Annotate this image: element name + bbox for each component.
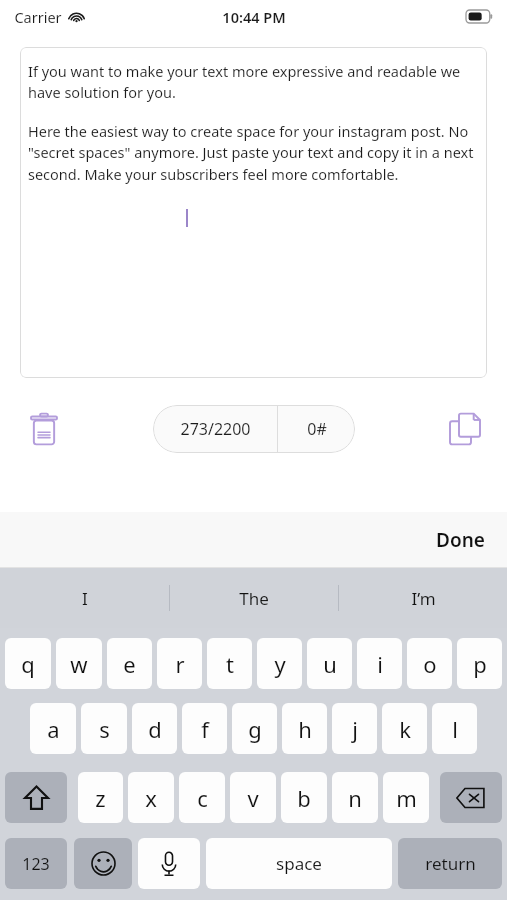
button[interactable]: n <box>332 772 378 823</box>
button[interactable]: h <box>282 703 327 754</box>
button[interactable]: q <box>5 638 51 689</box>
staticText: The <box>239 587 269 610</box>
staticText: p <box>473 649 487 679</box>
staticText: s <box>99 714 110 744</box>
staticText: t <box>226 649 234 679</box>
button[interactable]: x <box>128 772 174 823</box>
staticText: Carrier <box>14 7 62 27</box>
staticText: x <box>145 783 157 813</box>
staticText: return <box>425 852 476 875</box>
button[interactable]: c <box>179 772 225 823</box>
button[interactable]: Emoji <box>74 838 132 889</box>
button[interactable]: y <box>257 638 302 689</box>
button[interactable]: I <box>0 568 169 628</box>
button[interactable]: v <box>230 772 276 823</box>
staticText: u <box>323 649 337 679</box>
button[interactable]: r <box>157 638 202 689</box>
button[interactable]: Shift <box>5 772 67 823</box>
button[interactable]: Done <box>414 517 507 563</box>
button[interactable]: 273/2200 <box>153 405 355 453</box>
button[interactable]: g <box>232 703 277 754</box>
staticText: j <box>352 714 358 744</box>
button[interactable]: f <box>182 703 227 754</box>
staticText: m <box>396 783 417 813</box>
staticText: 123 <box>22 853 50 875</box>
staticText: a <box>47 714 60 744</box>
button[interactable]: j <box>332 703 377 754</box>
staticText: r <box>175 649 185 679</box>
button[interactable]: If you want to make your text more expre… <box>20 47 487 378</box>
staticText: Here the easiest way to create space for… <box>28 121 479 184</box>
button[interactable]: a <box>30 703 76 754</box>
staticText: 10:44 PM <box>222 7 286 27</box>
staticText: I <box>82 587 88 610</box>
button[interactable]: u <box>307 638 352 689</box>
button[interactable]: i <box>357 638 402 689</box>
button[interactable]: Clear text <box>22 407 66 451</box>
staticText: z <box>95 783 106 813</box>
staticText: Done <box>436 527 485 553</box>
button[interactable]: Dictation <box>138 838 200 889</box>
staticText: h <box>298 714 312 744</box>
button[interactable]: e <box>107 638 152 689</box>
staticText: If you want to make your text more expre… <box>28 61 479 102</box>
button[interactable]: 123 <box>5 838 67 889</box>
button[interactable]: t <box>207 638 252 689</box>
staticText: d <box>148 714 162 744</box>
button[interactable]: o <box>407 638 452 689</box>
staticText: space <box>276 852 322 875</box>
staticText: I’m <box>411 587 436 610</box>
button[interactable]: return <box>398 838 502 889</box>
staticText: w <box>70 649 88 679</box>
button[interactable]: m <box>383 772 429 823</box>
staticText: 273/2200 <box>180 418 251 440</box>
staticText: f <box>201 714 209 744</box>
staticText: y <box>274 649 286 679</box>
staticText: e <box>123 649 136 679</box>
staticText: c <box>197 783 208 813</box>
button[interactable]: s <box>81 703 127 754</box>
staticText: v <box>247 783 259 813</box>
button[interactable]: z <box>78 772 123 823</box>
staticText: k <box>399 714 411 744</box>
staticText: g <box>248 714 262 744</box>
button[interactable]: w <box>56 638 102 689</box>
staticText: 0# <box>307 418 327 440</box>
button[interactable]: I’m <box>339 568 507 628</box>
button[interactable]: d <box>132 703 177 754</box>
staticText: l <box>452 714 458 744</box>
button[interactable]: l <box>432 703 477 754</box>
button[interactable]: k <box>382 703 427 754</box>
staticText: n <box>348 783 362 813</box>
button[interactable]: p <box>457 638 502 689</box>
staticText: i <box>377 649 383 679</box>
button[interactable]: Backspace <box>440 772 502 823</box>
staticText: o <box>423 649 437 679</box>
button[interactable]: Copy text <box>443 407 487 451</box>
button[interactable]: The <box>170 568 338 628</box>
staticText: q <box>21 649 35 679</box>
button[interactable]: space <box>206 838 392 889</box>
button[interactable]: b <box>281 772 327 823</box>
staticText: b <box>297 783 311 813</box>
